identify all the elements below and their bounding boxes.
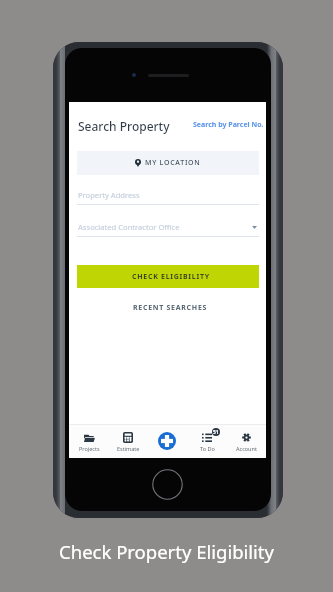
staticText: 51 <box>213 429 219 436</box>
button[interactable]: Add <box>158 432 176 450</box>
staticText: Associated Contractor Office <box>78 222 180 232</box>
button[interactable]: MY LOCATION <box>77 151 259 175</box>
button[interactable]: 51 <box>189 427 225 455</box>
staticText: CHECK ELIGIBILITY <box>132 272 210 282</box>
button[interactable]: CHECK ELIGIBILITY <box>77 265 259 288</box>
staticText: Property Address <box>78 190 140 200</box>
staticText: Search by Parcel No. <box>193 120 264 130</box>
staticText: Check Property Eligibility <box>59 539 274 564</box>
staticText: RECENT SEARCHES <box>133 303 208 313</box>
button[interactable]: RECENT SEARCHES <box>69 301 266 315</box>
staticText: To Do <box>200 445 215 452</box>
button[interactable]: Account <box>228 427 264 455</box>
staticText: Estimate <box>117 445 140 452</box>
button[interactable]: Projects <box>71 427 107 455</box>
staticText: Account <box>236 445 257 452</box>
staticText: Projects <box>79 445 100 452</box>
button[interactable]: Search by Parcel No. <box>193 120 264 130</box>
staticText: Search Property <box>78 118 170 134</box>
button[interactable]: Estimate <box>110 427 146 455</box>
staticText: MY LOCATION <box>145 158 201 168</box>
